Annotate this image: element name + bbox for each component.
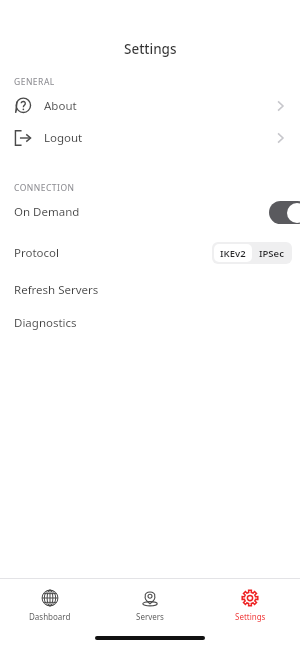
staticText: Settings [124,40,177,58]
button[interactable]: On Demand [0,196,300,228]
button[interactable]: Logout [0,122,300,154]
button[interactable]: Settings [200,588,300,622]
staticText: CONNECTION [14,182,75,194]
button[interactable]: Protocol [0,237,300,269]
staticText: GENERAL [14,76,55,88]
button[interactable]: IKEv2 [214,244,252,262]
button[interactable]: Diagnostics [0,311,300,335]
button[interactable]: Dashboard [0,588,100,622]
staticText: IKEv2 [220,247,246,260]
staticText: Protocol [14,245,59,261]
staticText: Dashboard [29,611,71,622]
button[interactable]: On Demand toggle [269,201,300,224]
staticText: Diagnostics [14,315,77,331]
button[interactable]: Servers [100,588,200,622]
button[interactable]: Refresh Servers [0,278,300,302]
button[interactable]: About [0,90,300,122]
staticText: Logout [44,130,83,146]
staticText: Refresh Servers [14,282,99,298]
staticText: On Demand [14,204,80,220]
staticText: Servers [136,611,164,622]
button[interactable]: IPSec [252,244,290,262]
staticText: IPSec [259,247,284,260]
staticText: Settings [235,611,266,622]
staticText: About [44,98,77,114]
